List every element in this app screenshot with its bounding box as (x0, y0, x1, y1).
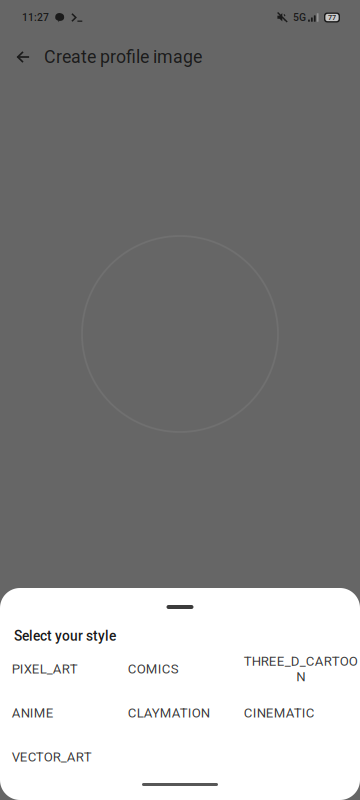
button[interactable]: COMICS (127, 647, 243, 691)
button[interactable]: PIXEL_ART (11, 647, 127, 691)
staticText: PIXEL_ART (11, 661, 77, 677)
staticText: 11:27 (22, 11, 49, 24)
staticText: CLAYMATION (127, 705, 209, 721)
staticText: Select your style (14, 628, 116, 644)
staticText: THREE_D_CARTOO N (243, 654, 357, 684)
button[interactable]: Back (5, 39, 41, 75)
staticText: VECTOR_ART (11, 749, 91, 765)
button[interactable]: VECTOR_ART (11, 735, 127, 779)
staticText: Create profile image (44, 47, 202, 67)
button[interactable]: ANIME (11, 691, 127, 735)
staticText: 77 (328, 13, 336, 22)
staticText: COMICS (127, 661, 178, 677)
button[interactable]: THREE_D_CARTOON (243, 647, 359, 691)
button[interactable]: CINEMATIC (243, 691, 359, 735)
staticText: 5G (293, 11, 306, 24)
staticText: CINEMATIC (243, 705, 314, 721)
button[interactable]: CLAYMATION (127, 691, 243, 735)
staticText: ANIME (11, 705, 53, 721)
